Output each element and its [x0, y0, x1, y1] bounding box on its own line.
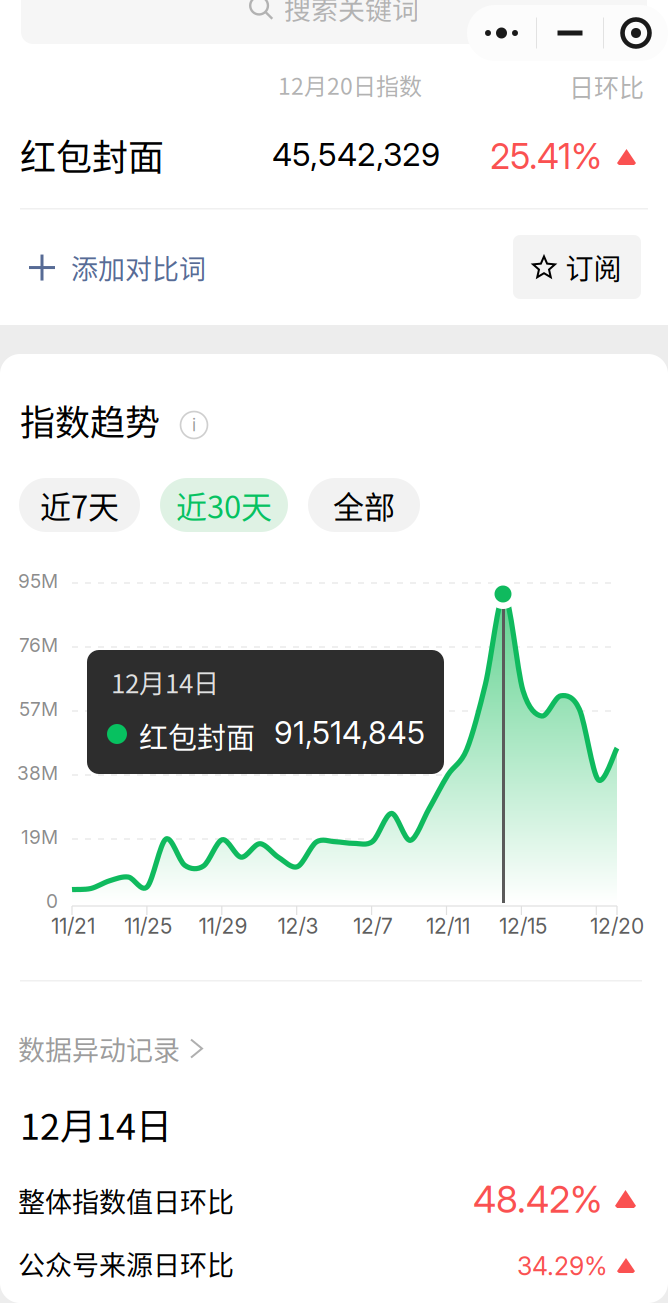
- staticText: 公众号来源日环比: [18, 1244, 234, 1283]
- staticText: 近30天: [176, 483, 272, 527]
- staticText: 11/29: [198, 913, 247, 939]
- staticText: 11/25: [124, 913, 172, 939]
- staticText: 红包封面: [139, 715, 255, 757]
- staticText: 0: [46, 889, 58, 912]
- staticText: 11/21: [51, 913, 95, 939]
- staticText: 近7天: [40, 483, 119, 527]
- staticText: 12月14日: [111, 663, 219, 701]
- staticText: 91,514,845: [274, 714, 425, 751]
- staticText: 数据异动记录: [18, 1029, 180, 1068]
- staticText: 48.42%: [473, 1177, 602, 1222]
- button[interactable]: More: [467, 5, 536, 61]
- staticText: 12月20日指数: [278, 68, 422, 101]
- button[interactable]: 数据异动记录: [16, 1017, 205, 1080]
- staticText: 12/3: [277, 913, 318, 939]
- staticText: 订阅: [565, 247, 621, 287]
- button[interactable]: Minimize: [537, 5, 603, 61]
- button[interactable]: Record: [604, 5, 668, 61]
- staticText: 57M: [19, 697, 58, 720]
- staticText: 12月14日: [20, 1098, 172, 1150]
- staticText: 日环比: [569, 68, 644, 104]
- staticText: 添加对比词: [71, 248, 206, 287]
- staticText: i: [192, 415, 196, 435]
- staticText: 12/7: [353, 913, 393, 939]
- button[interactable]: 订阅: [513, 235, 641, 299]
- staticText: 整体指数值日环比: [18, 1181, 234, 1220]
- staticText: 25.41%: [490, 135, 602, 177]
- staticText: 76M: [19, 633, 58, 656]
- button[interactable]: 搜索关键词: [21, 0, 647, 44]
- button[interactable]: 全部: [308, 478, 420, 532]
- staticText: 19M: [21, 825, 58, 848]
- staticText: 红包封面: [20, 129, 164, 181]
- staticText: 34.29%: [517, 1251, 608, 1281]
- staticText: 12/11: [426, 913, 470, 939]
- button[interactable]: 添加对比词: [27, 234, 208, 301]
- button[interactable]: 近30天: [160, 478, 288, 532]
- button[interactable]: About index trend: [174, 405, 214, 445]
- staticText: 全部: [333, 483, 395, 527]
- staticText: 45,542,329: [272, 135, 440, 174]
- staticText: 指数趋势: [20, 395, 160, 446]
- staticText: 搜索关键词: [284, 0, 419, 28]
- button[interactable]: 近7天: [19, 478, 140, 532]
- staticText: 95M: [18, 569, 58, 592]
- staticText: 38M: [17, 761, 58, 784]
- staticText: 12/15: [499, 913, 547, 939]
- staticText: 12/20: [590, 913, 644, 939]
